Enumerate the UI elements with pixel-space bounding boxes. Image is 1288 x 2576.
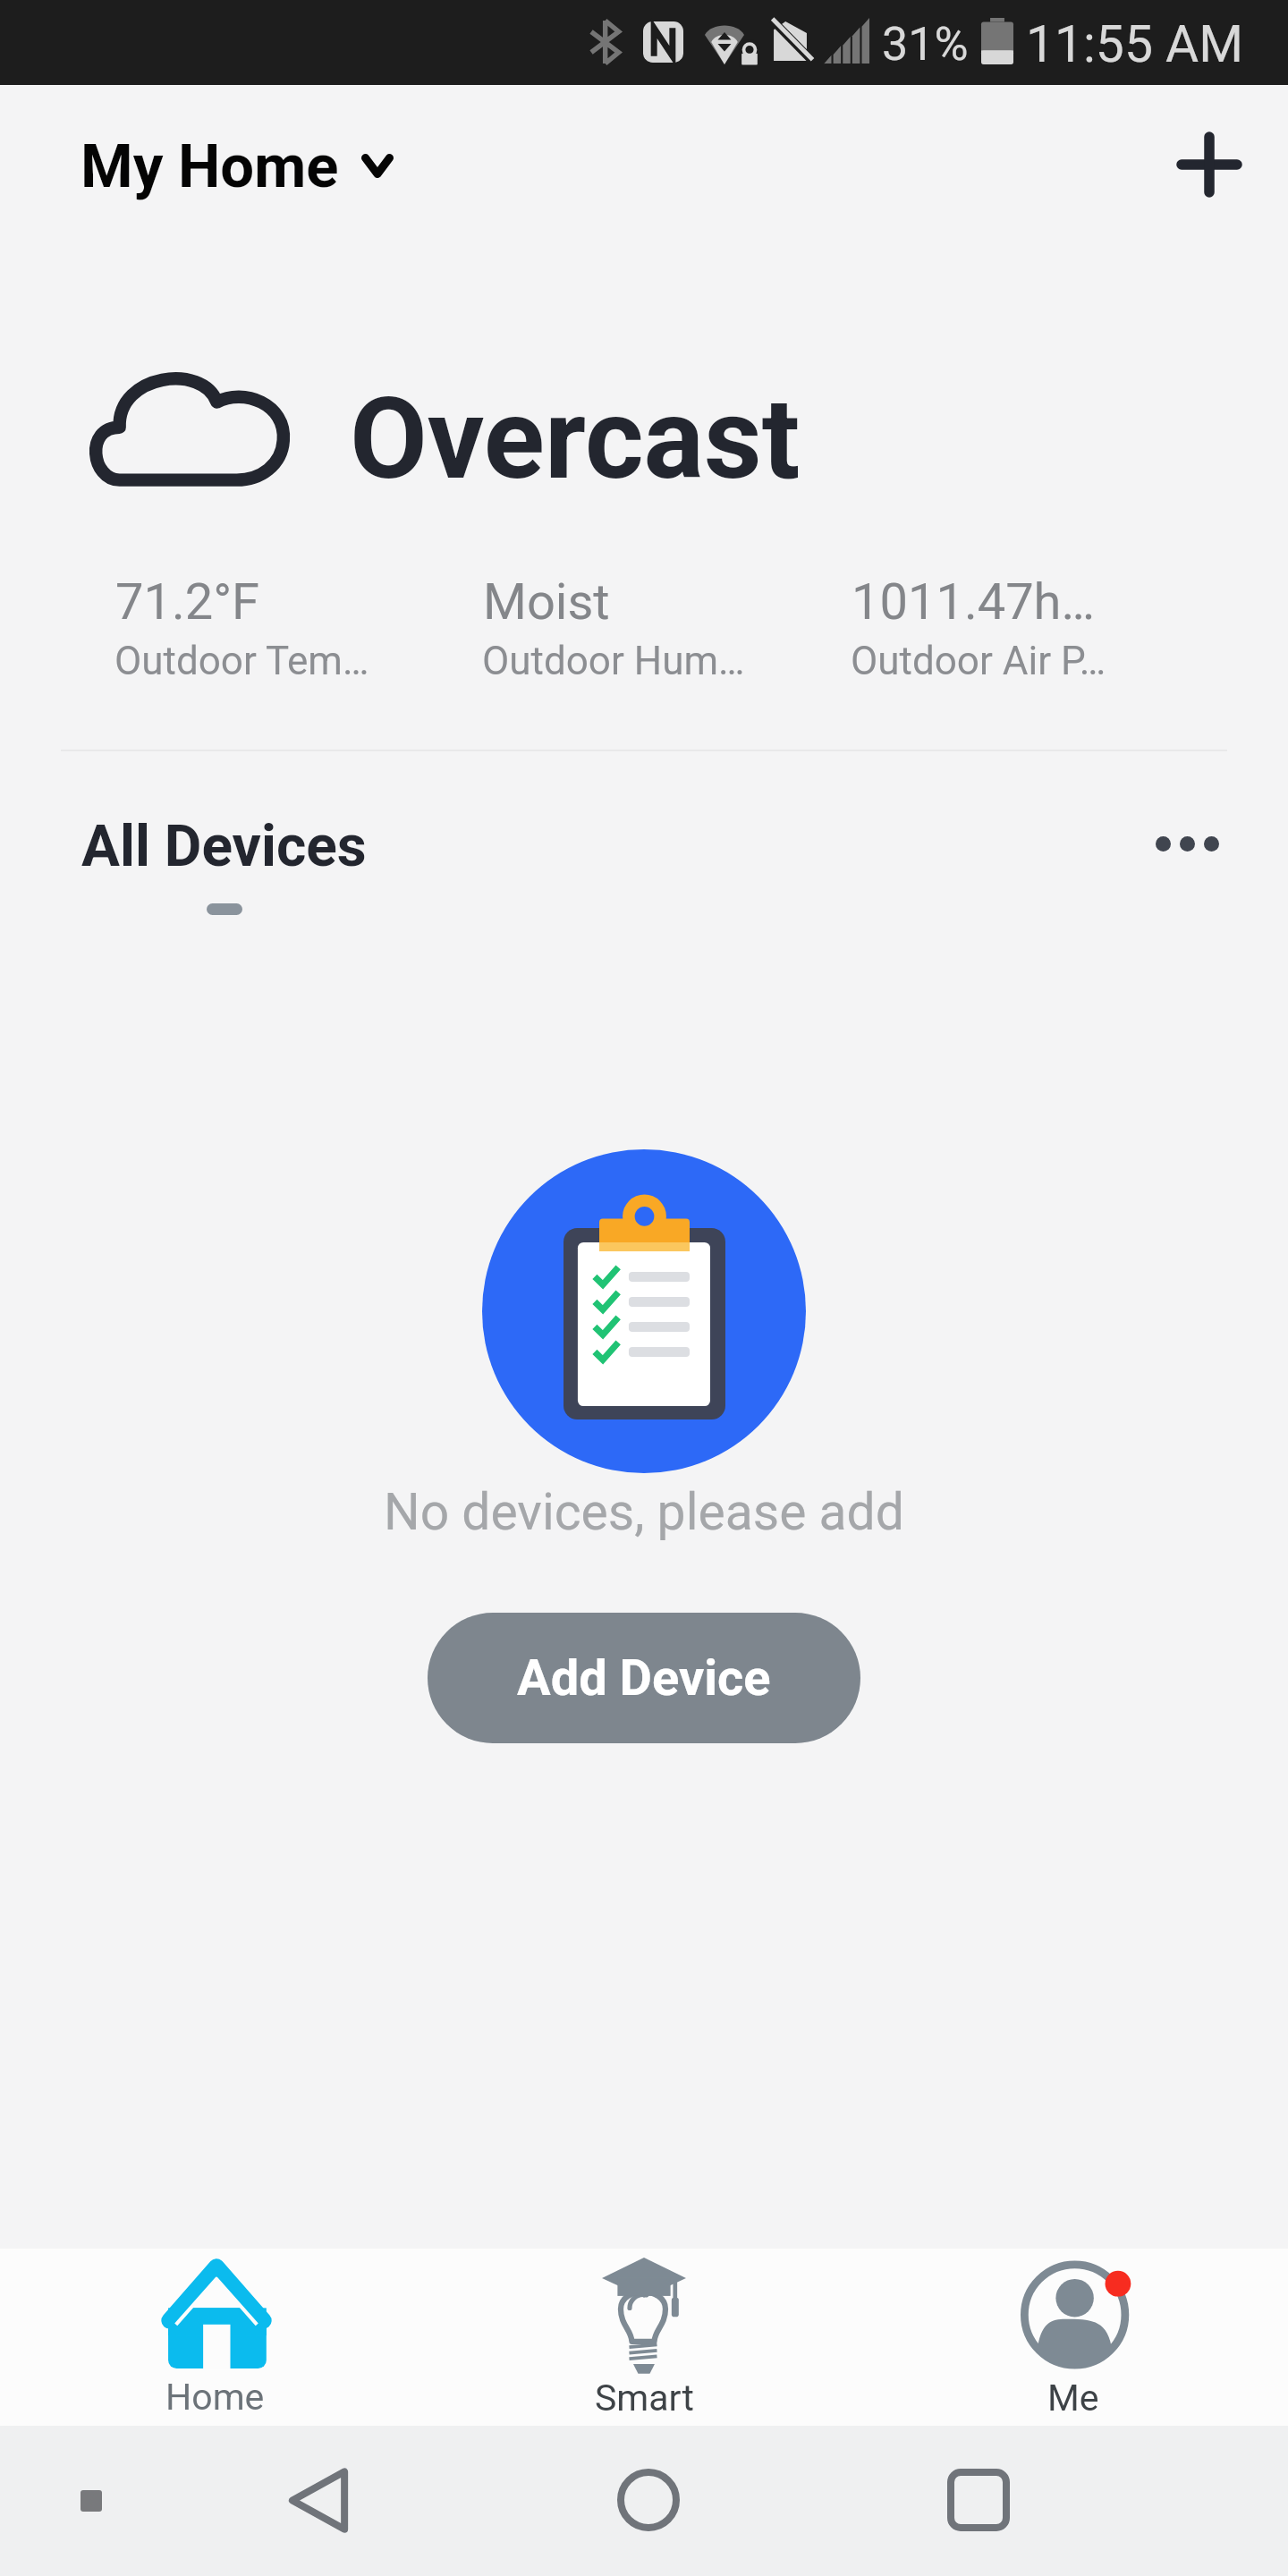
button[interactable]: Smart [429,2249,859,2426]
staticText: Add Device [517,1648,771,1707]
staticText: 71.2°F [115,572,260,631]
button[interactable]: Add Device [428,1613,860,1743]
staticText: All Devices [81,813,367,880]
staticText: Moist [483,572,610,631]
staticText: Overcast [350,373,801,505]
staticText: No devices, please add [384,1482,904,1542]
staticText: Me [1047,2377,1099,2419]
button[interactable]: More options [1136,807,1238,880]
staticText: 11:55 AM [1026,14,1244,74]
staticText: Outdoor Tem… [114,638,369,684]
staticText: 1011.47h… [852,572,1095,631]
staticText: Home [165,2376,265,2419]
button[interactable]: Recent apps [925,2446,1032,2554]
button[interactable]: All Devices [81,813,367,915]
button[interactable]: My Home [80,131,394,202]
button[interactable]: Back [265,2446,372,2554]
staticText: My Home [80,131,339,202]
staticText: Outdoor Hum… [482,638,745,684]
button[interactable]: Home [0,2249,429,2426]
button[interactable]: Home [595,2446,702,2554]
staticText: 31% [882,17,969,72]
button[interactable]: Add device [1159,114,1259,215]
button[interactable]: Me [859,2249,1288,2426]
staticText: Outdoor Air P… [851,638,1106,684]
staticText: Smart [595,2377,694,2419]
